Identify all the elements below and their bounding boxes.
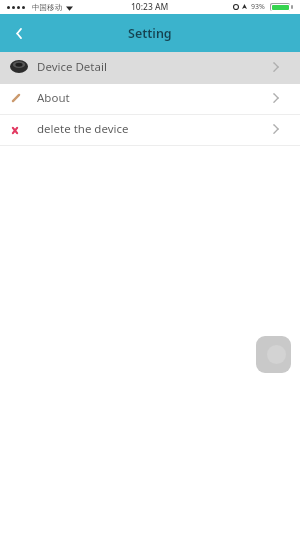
button[interactable]: delete the device xyxy=(0,115,300,145)
button[interactable]: About xyxy=(0,84,300,114)
staticText: 10:23 AM xyxy=(131,1,169,13)
button[interactable]: Device Detail xyxy=(0,52,300,84)
staticText: Device Detail xyxy=(37,59,107,75)
staticText: 93% xyxy=(251,2,265,12)
staticText: About xyxy=(37,90,70,106)
button[interactable]: Back xyxy=(0,14,38,52)
button[interactable]: Assistive touch xyxy=(256,336,291,373)
staticText: delete the device xyxy=(37,121,129,137)
staticText: 中国移动 xyxy=(32,3,62,12)
staticText: Setting xyxy=(128,25,172,42)
